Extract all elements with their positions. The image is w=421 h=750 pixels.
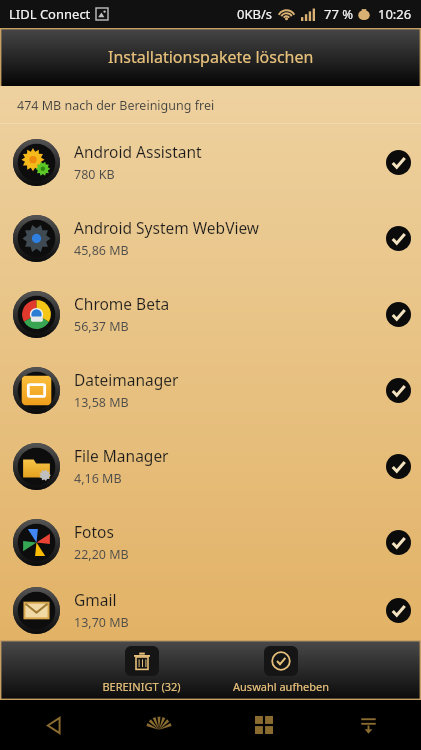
button[interactable]: Android System WebView xyxy=(0,200,421,276)
staticText: 22,20 MB xyxy=(74,546,129,563)
staticText: 474 MB nach der Bereinigung frei xyxy=(17,97,215,114)
button[interactable]: Auswahl Android Assistant xyxy=(375,139,421,185)
button[interactable]: Chrome Beta xyxy=(0,276,421,352)
staticText: 13,70 MB xyxy=(74,614,129,631)
button[interactable]: Android Assistant xyxy=(0,124,421,200)
staticText: Installationspakete löschen xyxy=(108,46,314,68)
staticText: 0KB/s xyxy=(237,5,272,23)
staticText: 77 % xyxy=(324,5,354,23)
button[interactable]: Auswahl Chrome Beta xyxy=(375,291,421,337)
button[interactable]: Auswahl aufheben xyxy=(231,646,331,694)
staticText: 4,16 MB xyxy=(74,470,122,487)
staticText: BEREINIGT (32) xyxy=(102,679,181,694)
staticText: Gmail xyxy=(74,589,117,610)
button[interactable]: Auswahl Dateimanager xyxy=(375,367,421,413)
staticText: 780 KB xyxy=(74,166,115,183)
button[interactable]: Gmail xyxy=(0,580,421,640)
button[interactable]: Auswahl Gmail xyxy=(375,587,421,633)
button[interactable]: Dateimanager xyxy=(0,352,421,428)
button[interactable]: Letzte Apps xyxy=(211,700,316,750)
button[interactable]: Auswahl File Manager xyxy=(375,443,421,489)
staticText: Android System WebView xyxy=(74,217,260,238)
button[interactable]: Installationspakete löschen xyxy=(0,28,421,86)
staticText: Chrome Beta xyxy=(74,293,170,314)
staticText: 13,58 MB xyxy=(74,394,129,411)
staticText: Auswahl aufheben xyxy=(233,679,329,694)
button[interactable]: File Manager xyxy=(0,428,421,504)
button[interactable]: Auswahl Android System WebView xyxy=(375,215,421,261)
button[interactable]: Auswahl Fotos xyxy=(375,519,421,565)
button[interactable]: Fotos xyxy=(0,504,421,580)
button[interactable]: Benachrichtigungen xyxy=(316,700,421,750)
button[interactable]: BEREINIGT (32) xyxy=(100,646,183,694)
button[interactable]: Startseite xyxy=(106,700,211,750)
staticText: LIDL Connect xyxy=(9,5,91,23)
staticText: 10:26 xyxy=(378,5,412,23)
button[interactable]: Zurück xyxy=(0,700,106,750)
staticText: 45,86 MB xyxy=(74,242,129,259)
staticText: Dateimanager xyxy=(74,369,179,390)
staticText: File Manager xyxy=(74,445,169,466)
staticText: Android Assistant xyxy=(74,141,202,162)
staticText: 56,37 MB xyxy=(74,318,129,335)
staticText: Fotos xyxy=(74,521,114,542)
